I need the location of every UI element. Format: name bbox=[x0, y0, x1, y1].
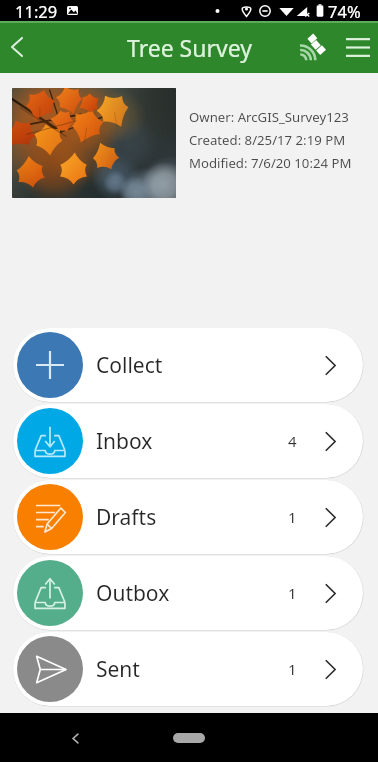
button[interactable]: Outbox bbox=[13, 556, 363, 630]
button[interactable]: GPS status bbox=[294, 30, 328, 64]
button[interactable]: Collect bbox=[13, 328, 363, 402]
staticText: 1 bbox=[288, 659, 297, 679]
button[interactable]: Home bbox=[173, 733, 205, 743]
staticText: 1 bbox=[288, 583, 297, 603]
button[interactable]: Menu bbox=[340, 29, 376, 65]
button[interactable]: Sent bbox=[13, 632, 363, 706]
staticText: Drafts bbox=[96, 503, 157, 532]
staticText: Sent bbox=[96, 655, 140, 684]
staticText: 1 bbox=[288, 507, 297, 527]
staticText: Tree Survey bbox=[127, 32, 252, 63]
button[interactable]: Inbox bbox=[13, 404, 363, 478]
button[interactable]: Back bbox=[64, 727, 86, 749]
staticText: Inbox bbox=[96, 427, 153, 456]
button[interactable]: Back bbox=[1, 31, 33, 63]
staticText: 74% bbox=[328, 0, 361, 21]
button[interactable]: Drafts bbox=[13, 480, 363, 554]
staticText: Owner: ArcGIS_Survey123 bbox=[189, 108, 349, 126]
staticText: 4 bbox=[288, 431, 297, 451]
staticText: Created: 8/25/17 2:19 PM bbox=[189, 131, 346, 149]
staticText: 11:29 bbox=[15, 0, 58, 21]
staticText: Modified: 7/6/20 10:24 PM bbox=[189, 154, 352, 172]
staticText: Collect bbox=[96, 351, 163, 380]
staticText: Outbox bbox=[96, 579, 170, 608]
